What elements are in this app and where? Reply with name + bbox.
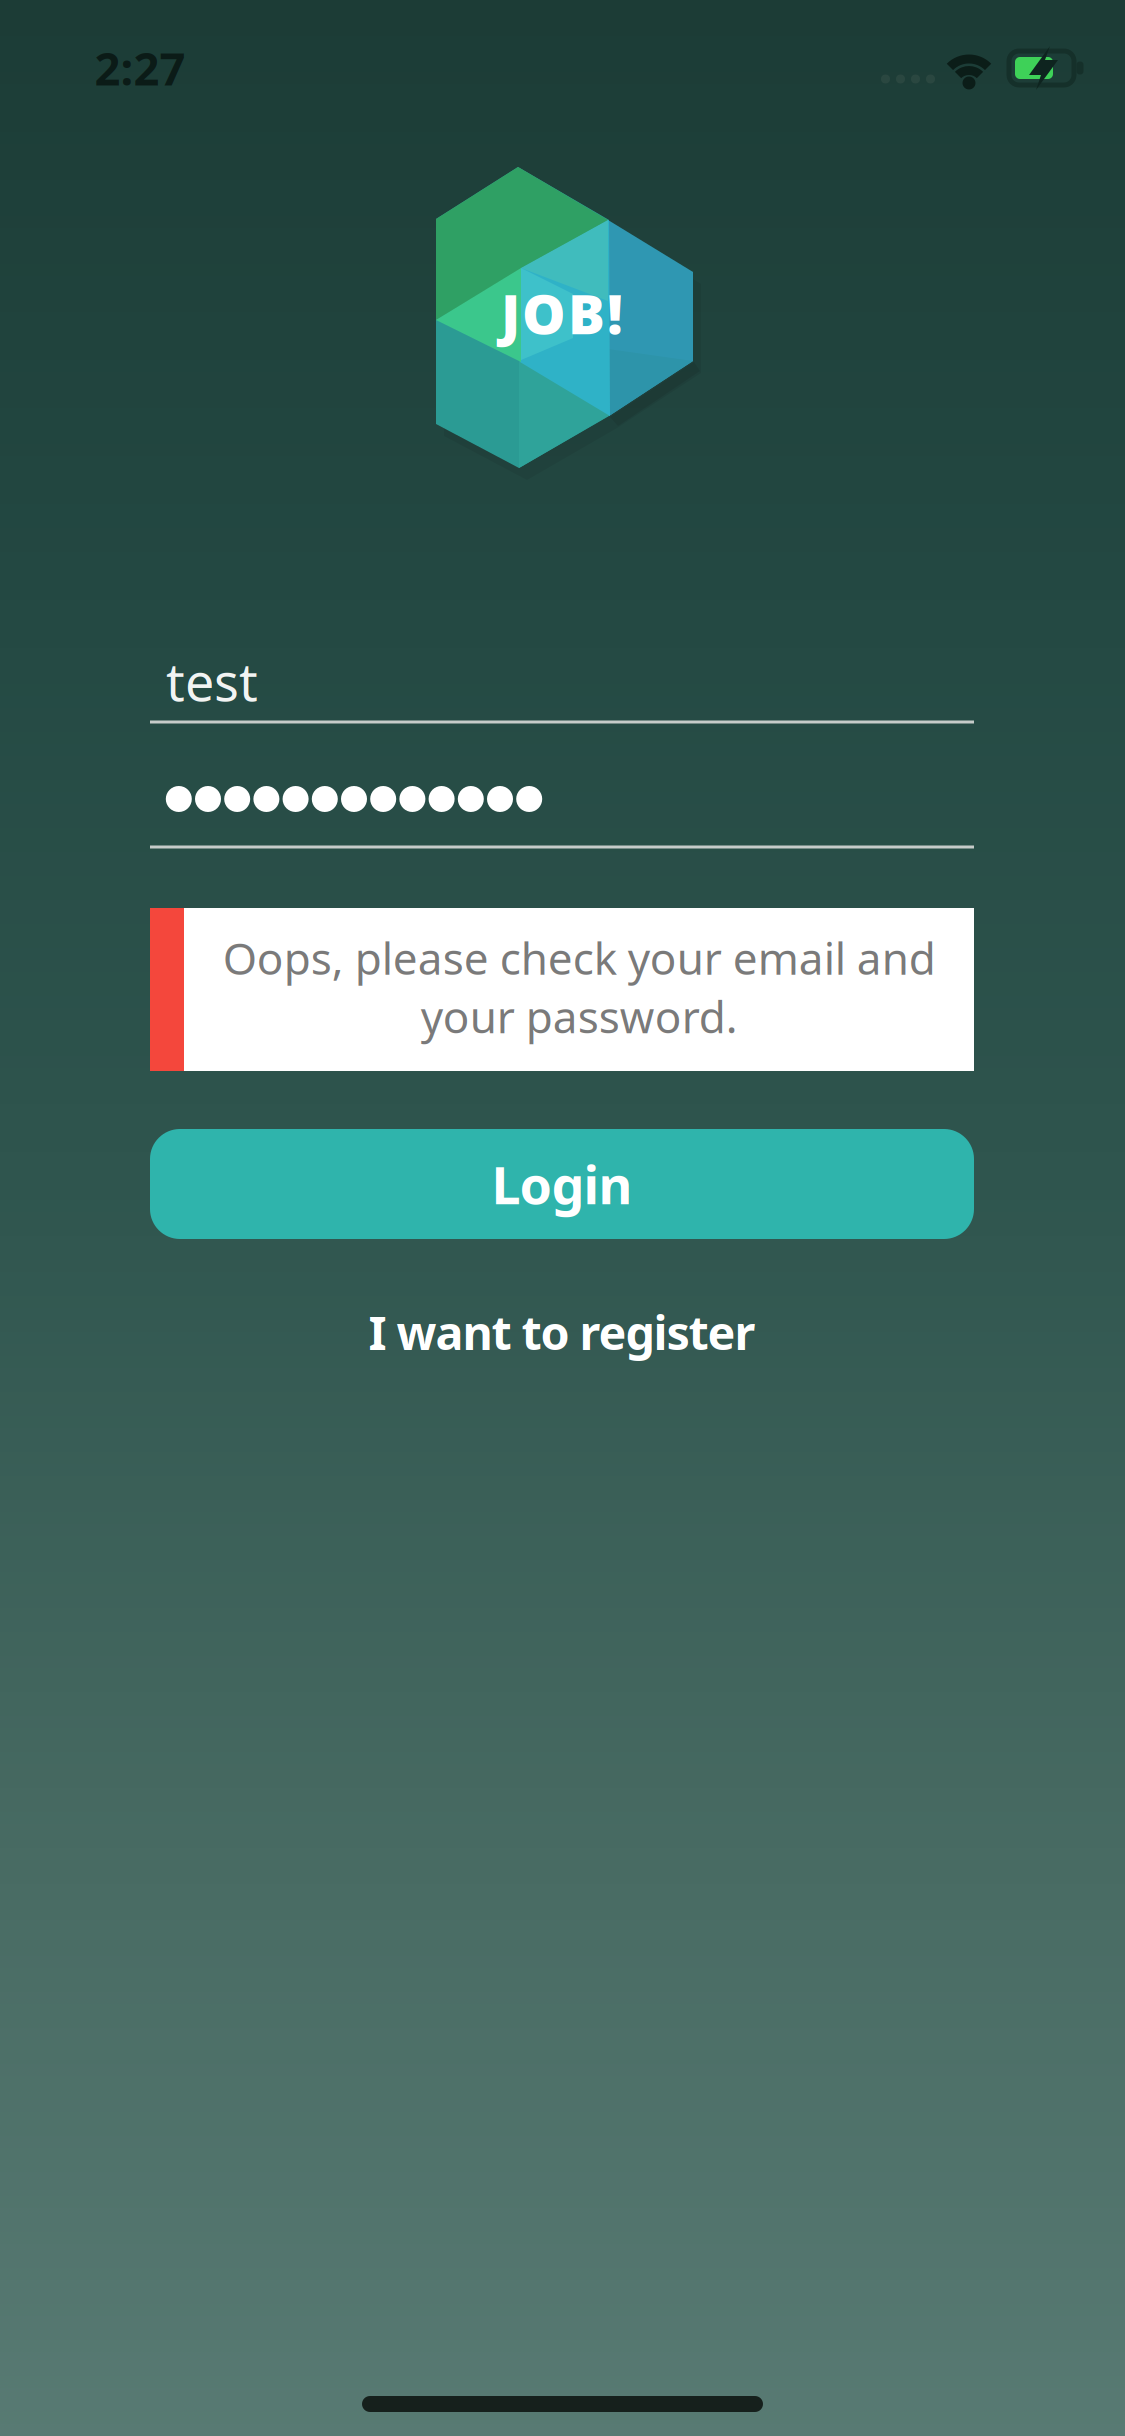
staticText: JOB!: [501, 277, 623, 349]
staticText: Login: [491, 1149, 632, 1219]
staticText: 2:27: [94, 38, 185, 98]
staticText: test: [166, 646, 258, 716]
staticText: Oops, please check your email and your p…: [222, 929, 935, 1045]
button[interactable]: I want to register: [368, 1301, 755, 1363]
button[interactable]: Login: [150, 1129, 974, 1239]
staticText: I want to register: [368, 1301, 755, 1363]
